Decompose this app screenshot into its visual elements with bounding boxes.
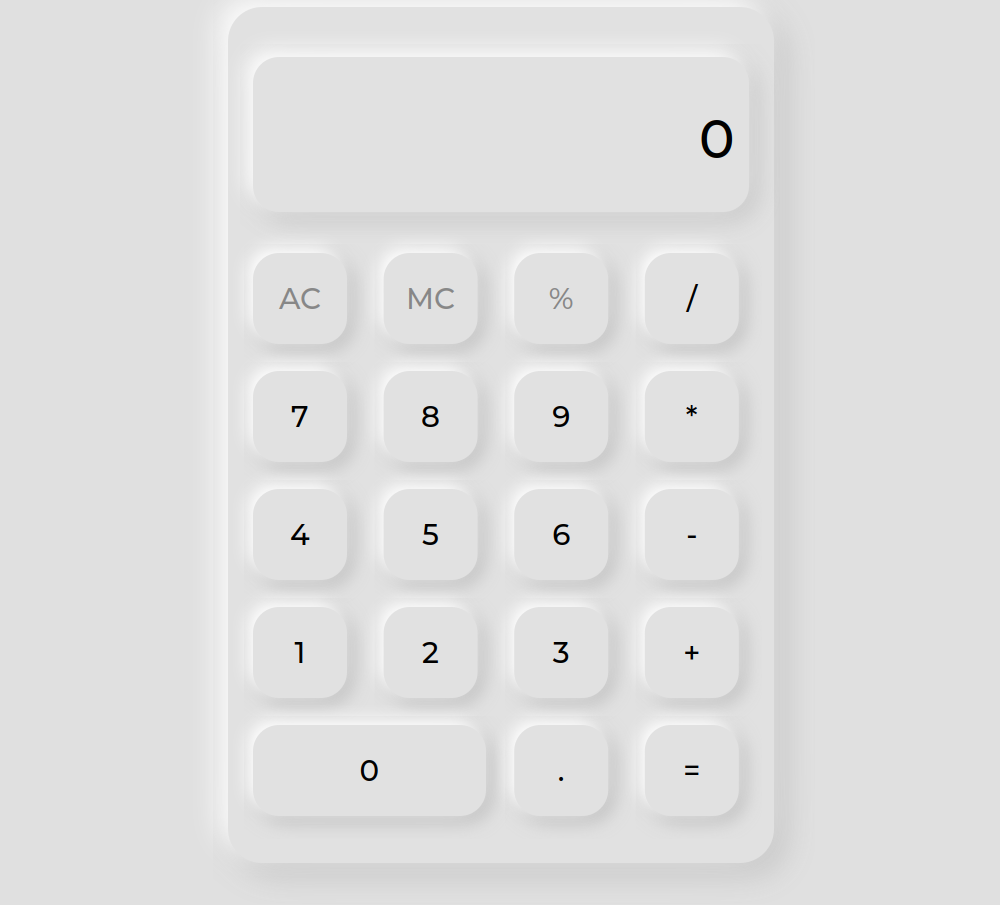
staticText: /	[687, 281, 697, 316]
button[interactable]: /	[645, 253, 739, 344]
button[interactable]: 7	[253, 371, 347, 462]
staticText: 1	[294, 635, 305, 670]
staticText: %	[549, 281, 574, 316]
button[interactable]: =	[645, 725, 739, 816]
button[interactable]: 3	[514, 607, 608, 698]
button[interactable]: -	[645, 489, 739, 580]
staticText: *	[686, 399, 698, 434]
button[interactable]: +	[645, 607, 739, 698]
staticText: +	[683, 635, 700, 670]
staticText: .	[558, 753, 565, 788]
button[interactable]: .	[514, 725, 608, 816]
button[interactable]: 6	[514, 489, 608, 580]
staticText: MC	[406, 281, 455, 316]
button[interactable]: %	[514, 253, 608, 344]
button[interactable]: 8	[384, 371, 478, 462]
staticText: 7	[291, 399, 309, 434]
button[interactable]: *	[645, 371, 739, 462]
button[interactable]: 0	[253, 725, 486, 816]
staticText: -	[686, 517, 697, 552]
staticText: 9	[552, 399, 570, 434]
button[interactable]: MC	[384, 253, 478, 344]
button[interactable]: 2	[384, 607, 478, 698]
staticText: AC	[279, 281, 321, 316]
staticText: 8	[421, 399, 440, 434]
staticText: =	[683, 753, 700, 788]
staticText: 6	[552, 517, 570, 552]
button[interactable]: AC	[253, 253, 347, 344]
staticText: 0	[359, 753, 379, 788]
staticText: 5	[422, 517, 439, 552]
staticText: 3	[553, 635, 570, 670]
staticText: 0	[699, 106, 735, 171]
button[interactable]: 5	[384, 489, 478, 580]
staticText: 2	[422, 635, 439, 670]
button[interactable]: 9	[514, 371, 608, 462]
button[interactable]: 4	[253, 489, 347, 580]
staticText: 4	[290, 517, 310, 552]
button[interactable]: 1	[253, 607, 347, 698]
